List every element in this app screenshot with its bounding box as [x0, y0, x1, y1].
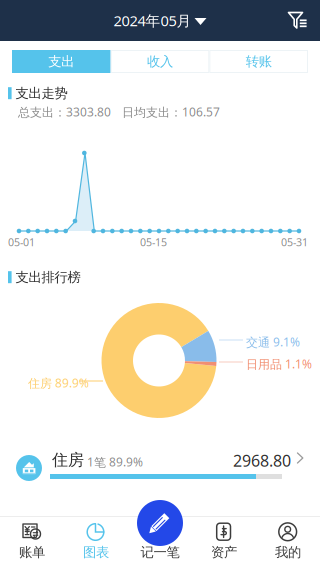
- staticText: 支出走势: [16, 85, 68, 101]
- button[interactable]: 我的: [256, 516, 320, 568]
- staticText: 1笔 89.9%: [87, 454, 143, 470]
- staticText: 收入: [147, 53, 173, 70]
- button[interactable]: 资产: [192, 516, 256, 568]
- button[interactable]: 筛选: [287, 7, 311, 33]
- staticText: 日均支出：106.57: [122, 104, 220, 120]
- staticText: 转账: [246, 53, 272, 70]
- staticText: 账单: [19, 544, 45, 560]
- staticText: 交通 9.1%: [246, 334, 300, 350]
- staticText: 支出: [48, 53, 74, 70]
- staticText: 2024年05月: [113, 11, 191, 30]
- staticText: 总支出：3303.80: [18, 104, 111, 120]
- staticText: 2968.80: [233, 450, 291, 471]
- staticText: 05-01: [8, 235, 35, 249]
- staticText: 支出排行榜: [16, 269, 81, 285]
- staticText: 05-15: [140, 235, 167, 249]
- button[interactable]: 记一笔: [128, 516, 192, 568]
- staticText: 05-31: [281, 235, 308, 249]
- staticText: 记一笔: [140, 544, 179, 560]
- button[interactable]: 转账: [209, 50, 308, 73]
- button[interactable]: 图表: [64, 516, 128, 568]
- button[interactable]: 账单: [0, 516, 64, 568]
- staticText: 图表: [83, 544, 109, 560]
- staticText: 住房 89.9%: [28, 375, 89, 391]
- button[interactable]: 住房: [0, 445, 320, 495]
- staticText: 我的: [275, 544, 301, 560]
- button[interactable]: 收入: [111, 50, 209, 73]
- button[interactable]: 支出: [12, 50, 111, 73]
- button[interactable]: 记一笔: [137, 500, 183, 546]
- staticText: 日用品 1.1%: [246, 356, 312, 372]
- button[interactable]: 2024年05月: [107, 5, 212, 36]
- staticText: 资产: [211, 544, 237, 560]
- staticText: 住房: [52, 450, 84, 470]
